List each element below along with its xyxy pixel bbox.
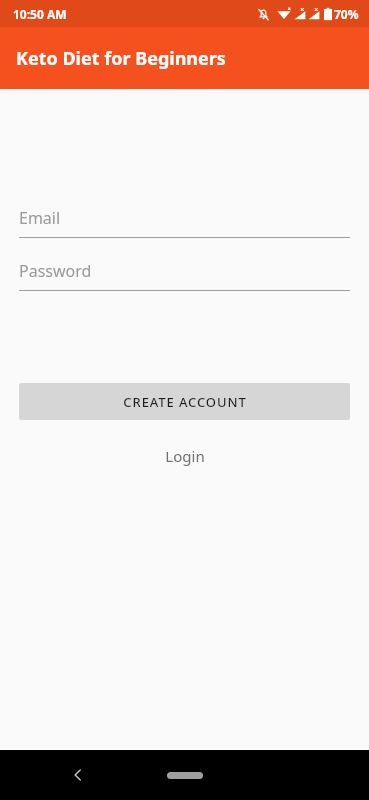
button[interactable]: Password [19, 258, 350, 291]
button[interactable]: CREATE ACCOUNT [19, 383, 350, 420]
button[interactable]: Home [155, 762, 215, 788]
staticText: 70% [334, 6, 359, 22]
button[interactable]: Back [60, 757, 96, 793]
staticText: Keto Diet for Beginners [16, 46, 226, 71]
staticText: Password [19, 260, 92, 282]
staticText: 10:50 AM [13, 6, 67, 22]
button[interactable]: Email [19, 205, 350, 238]
staticText: Login [165, 446, 205, 466]
staticText: CREATE ACCOUNT [123, 393, 247, 411]
staticText: Email [19, 207, 61, 229]
button[interactable]: Login [0, 446, 369, 466]
